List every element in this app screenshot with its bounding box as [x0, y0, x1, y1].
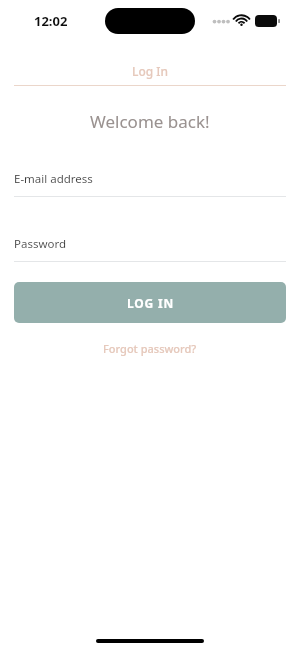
button[interactable]: Password: [14, 236, 286, 262]
button[interactable]: E-mail address: [14, 171, 286, 197]
staticText: Welcome back!: [90, 110, 210, 133]
button[interactable]: LOG IN: [14, 282, 286, 323]
button[interactable]: Log In: [0, 63, 300, 79]
staticText: Log In: [132, 63, 169, 79]
button[interactable]: Forgot password?: [0, 341, 300, 356]
staticText: 12:02: [34, 12, 68, 30]
staticText: LOG IN: [127, 295, 174, 311]
staticText: Forgot password?: [103, 341, 197, 356]
staticText: Password: [14, 236, 67, 252]
staticText: E-mail address: [14, 171, 93, 187]
